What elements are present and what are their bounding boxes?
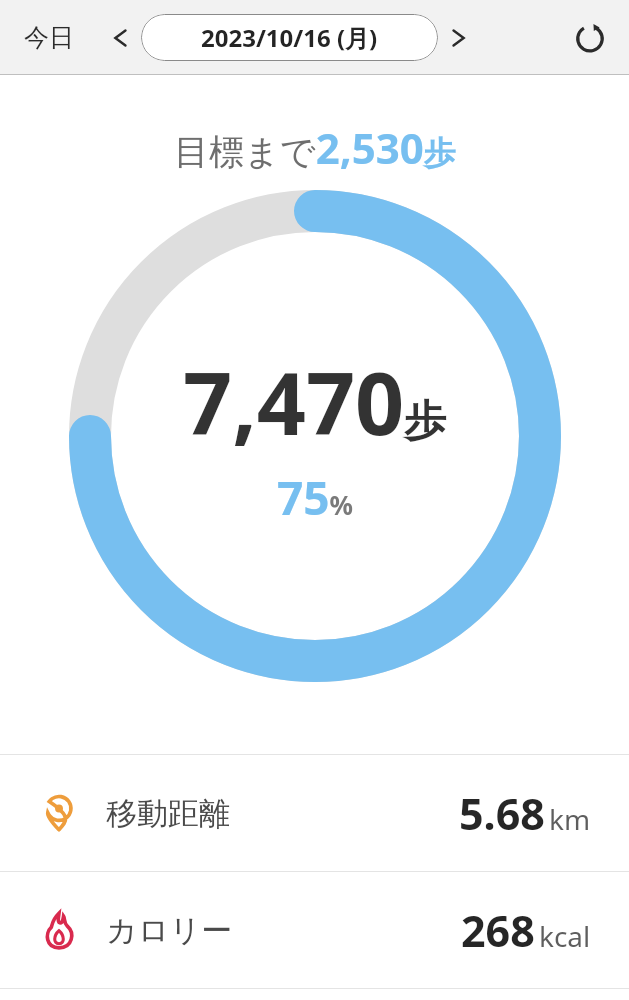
button[interactable]: Next day	[439, 18, 479, 58]
other: Calories	[40, 911, 78, 949]
staticText: 268 kcal	[461, 901, 591, 960]
button[interactable]: Calories	[0, 872, 629, 988]
staticText: 75%	[277, 466, 354, 529]
staticText: 今日	[24, 22, 74, 53]
button[interactable]: Distance	[0, 755, 629, 871]
button[interactable]: 2023/10/16 (月)	[141, 14, 438, 61]
staticText: カロリー	[106, 911, 233, 950]
staticText: 移動距離	[106, 794, 230, 833]
other: Distance	[40, 794, 78, 832]
button[interactable]: 今日	[20, 14, 78, 61]
staticText: 2023/10/16 (月)	[201, 21, 378, 54]
staticText: 5.68 km	[459, 784, 591, 843]
staticText: 7,470歩	[183, 343, 447, 460]
button[interactable]: Refresh	[567, 15, 613, 61]
staticText: 目標まで2,530歩	[174, 119, 456, 176]
button[interactable]: Previous day	[100, 18, 140, 58]
